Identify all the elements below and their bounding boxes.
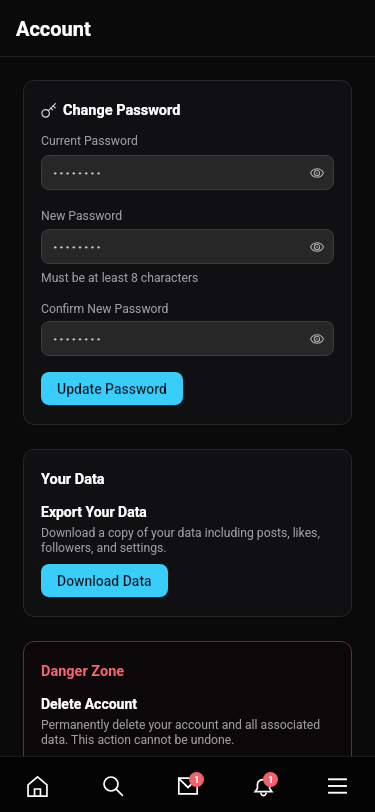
button[interactable]: Search bbox=[75, 756, 150, 812]
button[interactable]: Show password bbox=[310, 167, 324, 179]
button[interactable]: Show password bbox=[41, 321, 334, 356]
button[interactable]: Menu bbox=[300, 756, 375, 812]
button[interactable]: Show password bbox=[41, 229, 334, 264]
staticText: 1 bbox=[194, 774, 200, 785]
staticText: Delete Account bbox=[41, 696, 138, 712]
button[interactable]: Notifications bbox=[225, 756, 300, 812]
staticText: Confirm New Password bbox=[41, 302, 169, 316]
button[interactable]: Messages bbox=[150, 756, 225, 812]
staticText: Account bbox=[16, 17, 91, 40]
staticText: Update Password bbox=[57, 381, 167, 397]
button[interactable]: Show password bbox=[310, 241, 324, 253]
staticText: Export Your Data bbox=[41, 504, 147, 520]
button[interactable]: Download Data bbox=[41, 564, 168, 597]
staticText: New Password bbox=[41, 209, 123, 223]
staticText: Permanently delete your account and all … bbox=[41, 718, 334, 747]
staticText: 1 bbox=[268, 774, 274, 785]
button[interactable]: Show password bbox=[41, 155, 334, 190]
staticText: Current Password bbox=[41, 134, 138, 148]
button[interactable]: Show password bbox=[310, 333, 324, 345]
staticText: Download Data bbox=[57, 573, 152, 589]
button[interactable]: Home bbox=[0, 756, 75, 812]
staticText: Download a copy of your data including p… bbox=[41, 526, 334, 555]
staticText: Must be at least 8 characters bbox=[41, 271, 199, 285]
staticText: Your Data bbox=[41, 471, 105, 488]
button[interactable]: Update Password bbox=[41, 372, 183, 405]
staticText: Danger Zone bbox=[41, 663, 125, 680]
staticText: Change Password bbox=[63, 102, 181, 119]
